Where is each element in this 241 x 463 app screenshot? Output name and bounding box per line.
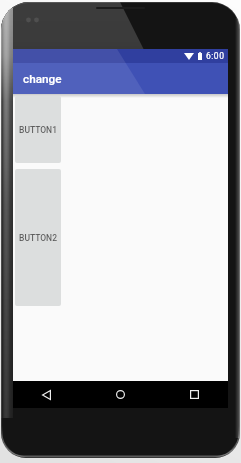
- staticText: BUTTON2: [19, 233, 57, 243]
- button[interactable]: Back: [42, 390, 51, 400]
- button[interactable]: change: [13, 63, 228, 94]
- staticText: 6:00: [206, 51, 225, 61]
- staticText: change: [23, 72, 62, 86]
- button[interactable]: BUTTON2: [15, 169, 61, 306]
- button[interactable]: Recent apps: [190, 390, 199, 399]
- button[interactable]: Home: [116, 390, 125, 399]
- staticText: BUTTON1: [19, 125, 57, 135]
- button[interactable]: BUTTON1: [15, 96, 61, 163]
